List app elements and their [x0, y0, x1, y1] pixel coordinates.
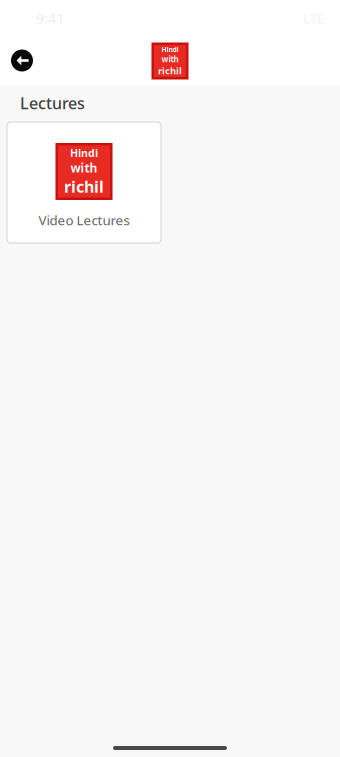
staticText: Hindi: [161, 45, 178, 54]
button[interactable]: Hindi: [7, 122, 161, 243]
staticText: Hindi: [70, 146, 98, 160]
staticText: Lectures: [20, 92, 85, 114]
staticText: richil: [64, 176, 104, 197]
staticText: Video Lectures: [38, 211, 129, 229]
staticText: with: [161, 54, 178, 64]
staticText: LTE: [303, 9, 324, 27]
staticText: with: [70, 160, 97, 176]
staticText: richil: [158, 64, 182, 77]
button[interactable]: Back: [0, 36, 60, 85]
staticText: 9:41: [36, 8, 64, 28]
